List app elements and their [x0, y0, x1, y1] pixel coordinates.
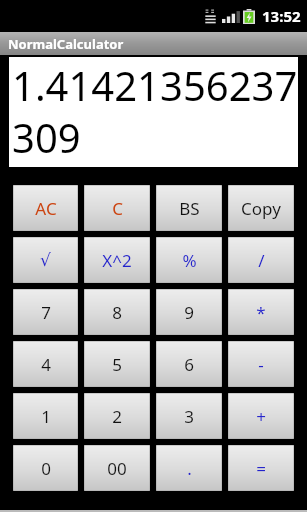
button[interactable]: 0 — [13, 445, 78, 491]
staticText: BS — [179, 197, 200, 220]
staticText: NormalCalculator — [8, 35, 124, 53]
staticText: X^2 — [102, 249, 132, 272]
button[interactable]: 5 — [84, 341, 150, 387]
staticText: Copy — [241, 197, 281, 220]
button[interactable]: 9 — [156, 289, 222, 335]
staticText: 4 — [41, 353, 51, 376]
button[interactable]: √ — [13, 237, 78, 283]
button[interactable]: 6 — [156, 341, 222, 387]
button[interactable]: 2 — [84, 393, 150, 439]
staticText: 1 — [41, 405, 51, 428]
staticText: √ — [40, 250, 51, 270]
button[interactable]: * — [228, 289, 294, 335]
staticText: / — [258, 249, 265, 272]
staticText: - — [258, 353, 264, 376]
staticText: % — [182, 249, 197, 272]
staticText: 6 — [184, 353, 194, 376]
button[interactable]: 8 — [84, 289, 150, 335]
staticText: * — [256, 301, 266, 324]
button[interactable]: + — [228, 393, 294, 439]
staticText: 3 — [184, 405, 194, 428]
staticText: 7 — [41, 301, 51, 324]
staticText: = — [256, 457, 266, 480]
button[interactable]: AC — [13, 185, 78, 231]
button[interactable]: 3 — [156, 393, 222, 439]
button[interactable]: 00 — [84, 445, 150, 491]
staticText: C — [112, 197, 123, 220]
button[interactable]: 7 — [13, 289, 78, 335]
button[interactable]: % — [156, 237, 222, 283]
staticText: AC — [35, 197, 57, 220]
staticText: 13:52 — [262, 6, 301, 26]
button[interactable]: Copy — [228, 185, 294, 231]
button[interactable]: 1.41421356237309 — [9, 57, 298, 167]
button[interactable]: - — [228, 341, 294, 387]
button[interactable]: 4 — [13, 341, 78, 387]
button[interactable]: C — [84, 185, 150, 231]
button[interactable]: = — [228, 445, 294, 491]
staticText: 1.41421356237309 — [12, 58, 298, 165]
staticText: 00 — [107, 457, 127, 480]
button[interactable]: / — [228, 237, 294, 283]
staticText: + — [256, 405, 266, 428]
staticText: . — [187, 457, 192, 480]
button[interactable]: X^2 — [84, 237, 150, 283]
staticText: 5 — [112, 353, 122, 376]
button[interactable]: BS — [156, 185, 222, 231]
staticText: 2 — [112, 405, 122, 428]
staticText: 9 — [184, 301, 194, 324]
staticText: 8 — [112, 301, 122, 324]
button[interactable]: . — [156, 445, 222, 491]
button[interactable]: 1 — [13, 393, 78, 439]
staticText: 0 — [41, 457, 51, 480]
